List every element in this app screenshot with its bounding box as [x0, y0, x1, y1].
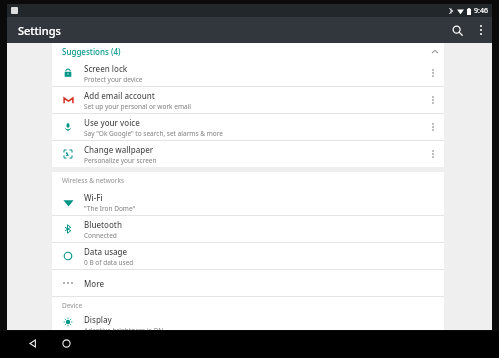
staticText: Wireless & networks	[62, 176, 124, 185]
staticText: "The Iron Dome"	[84, 204, 136, 213]
staticText: Screen lock	[84, 63, 128, 74]
button[interactable]: Dismiss suggestion	[422, 89, 444, 111]
button[interactable]: Dismiss suggestion	[422, 62, 444, 84]
button[interactable]: Change wallpaper	[52, 141, 444, 167]
staticText: Say "Ok Google" to search, set alarms & …	[84, 129, 223, 138]
button[interactable]: Home	[56, 333, 76, 353]
button[interactable]: Search	[444, 17, 470, 43]
staticText: Adaptive brightness is ON	[84, 326, 164, 330]
button[interactable]: Bluetooth	[52, 216, 444, 242]
button[interactable]: Data usage	[52, 243, 444, 269]
staticText: 0 B of data used	[84, 258, 134, 267]
staticText: Suggestions (4)	[62, 46, 121, 57]
button[interactable]: Screen lock	[52, 60, 444, 86]
staticText: Wi-Fi	[84, 192, 103, 203]
staticText: Set up your personal or work email	[84, 102, 191, 111]
staticText: Add email account	[84, 90, 155, 101]
button[interactable]: More	[52, 270, 444, 296]
staticText: Bluetooth	[84, 219, 122, 230]
button[interactable]: Dismiss suggestion	[422, 143, 444, 165]
button[interactable]: Dismiss suggestion	[422, 116, 444, 138]
staticText: 9:46	[474, 6, 488, 16]
button[interactable]: Back	[22, 333, 42, 353]
staticText: Data usage	[84, 246, 128, 257]
staticText: Use your voice	[84, 117, 140, 128]
button[interactable]: Use your voice	[52, 114, 444, 140]
button[interactable]: Add email account	[52, 87, 444, 113]
button[interactable]: Wi-Fi	[52, 189, 444, 215]
staticText: Device	[62, 301, 83, 310]
staticText: Connected	[84, 231, 117, 240]
staticText: More	[84, 278, 105, 289]
staticText: Display	[84, 314, 112, 325]
staticText: Personalize your screen	[84, 156, 157, 165]
staticText: Change wallpaper	[84, 144, 154, 155]
button[interactable]: Display	[52, 314, 444, 330]
other: Collapse	[426, 43, 444, 60]
staticText: Settings	[18, 23, 61, 38]
staticText: Protect your device	[84, 75, 143, 84]
button[interactable]: Suggestions (4)	[52, 43, 444, 60]
button[interactable]: More options	[470, 19, 492, 41]
